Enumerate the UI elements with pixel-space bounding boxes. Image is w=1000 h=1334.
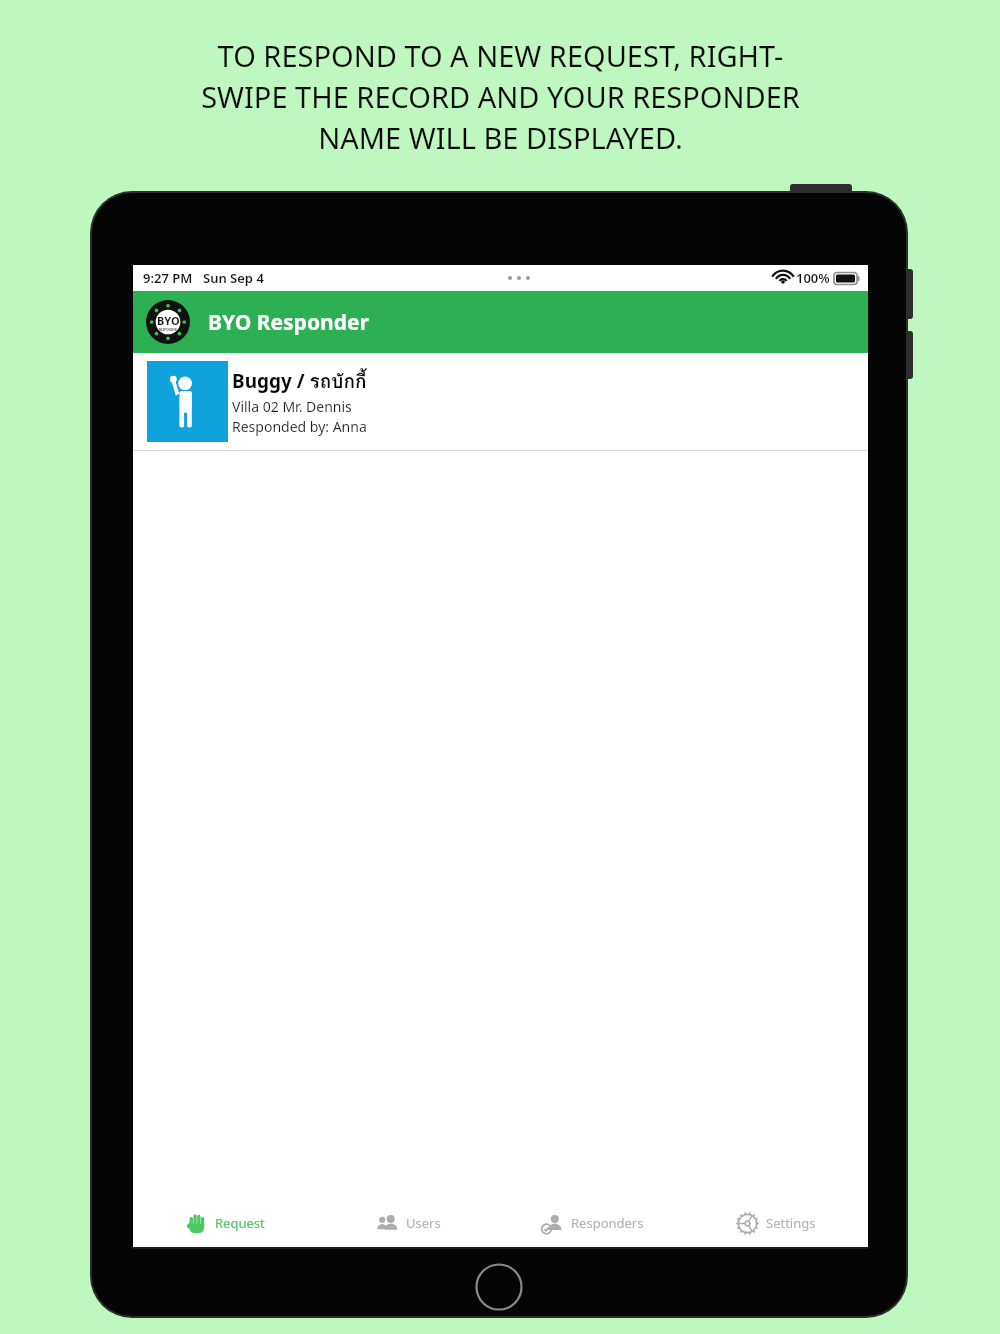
staticText: Request xyxy=(215,1214,265,1232)
button[interactable]: BYO Responder logo xyxy=(146,300,190,344)
staticText: 9:27 PM xyxy=(143,269,193,287)
button[interactable]: Request xyxy=(133,1197,316,1249)
staticText: Settings xyxy=(766,1214,816,1232)
staticText: BYO xyxy=(157,313,180,328)
staticText: Sun Sep 4 xyxy=(203,269,264,287)
button[interactable]: Buggy / รถบักกี้ xyxy=(133,361,868,451)
staticText: Villa 02 Mr. Dennis xyxy=(232,397,352,416)
staticText: 100% xyxy=(796,269,830,287)
button[interactable]: Users xyxy=(316,1197,500,1249)
staticText: BYO Responder xyxy=(208,308,369,337)
staticText: Responded by: Anna xyxy=(232,417,367,436)
staticText: TO RESPOND TO A NEW REQUEST, RIGHT- SWIP… xyxy=(201,36,800,158)
staticText: Users xyxy=(406,1214,441,1232)
staticText: Responders xyxy=(571,1214,644,1232)
button[interactable]: Responders xyxy=(500,1197,684,1249)
staticText: RESPONDER xyxy=(159,328,177,332)
button[interactable]: Settings xyxy=(684,1197,868,1249)
staticText: Buggy / รถบักกี้ xyxy=(232,366,367,396)
